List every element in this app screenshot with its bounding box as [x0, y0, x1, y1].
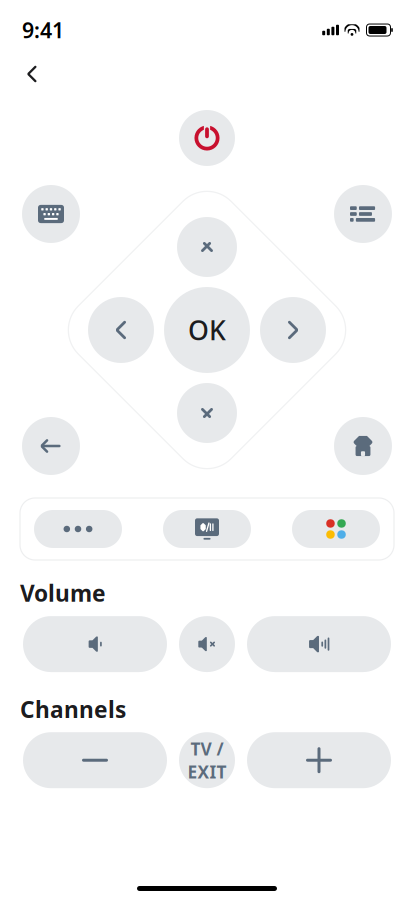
button[interactable]: Keyboard: [22, 185, 80, 243]
button[interactable]: Volume down: [23, 616, 167, 672]
button[interactable]: Volume up: [247, 616, 391, 672]
button[interactable]: Back: [22, 417, 80, 475]
button[interactable]: Channel down: [23, 732, 167, 788]
button[interactable]: Left: [88, 297, 154, 363]
button[interactable]: OK: [164, 287, 250, 373]
button[interactable]: Up: [177, 217, 237, 277]
button[interactable]: Power: [179, 110, 235, 166]
button[interactable]: Colour buttons: [292, 510, 380, 548]
staticText: OK: [188, 312, 226, 348]
staticText: Channels: [20, 694, 126, 724]
button[interactable]: Right: [260, 297, 326, 363]
button[interactable]: Guide: [334, 185, 392, 243]
button[interactable]: Channel up: [247, 732, 391, 788]
button[interactable]: More options: [34, 510, 122, 548]
button[interactable]: Back: [12, 54, 52, 94]
staticText: TV /: [190, 737, 223, 760]
button[interactable]: TV or exit: [179, 732, 235, 788]
button[interactable]: Down: [177, 383, 237, 443]
staticText: Volume: [20, 578, 106, 608]
button[interactable]: Mute: [179, 616, 235, 672]
staticText: 9:41: [22, 16, 64, 44]
button[interactable]: Play or pause: [163, 510, 251, 548]
staticText: EXIT: [187, 760, 226, 783]
button[interactable]: Home: [334, 417, 392, 475]
